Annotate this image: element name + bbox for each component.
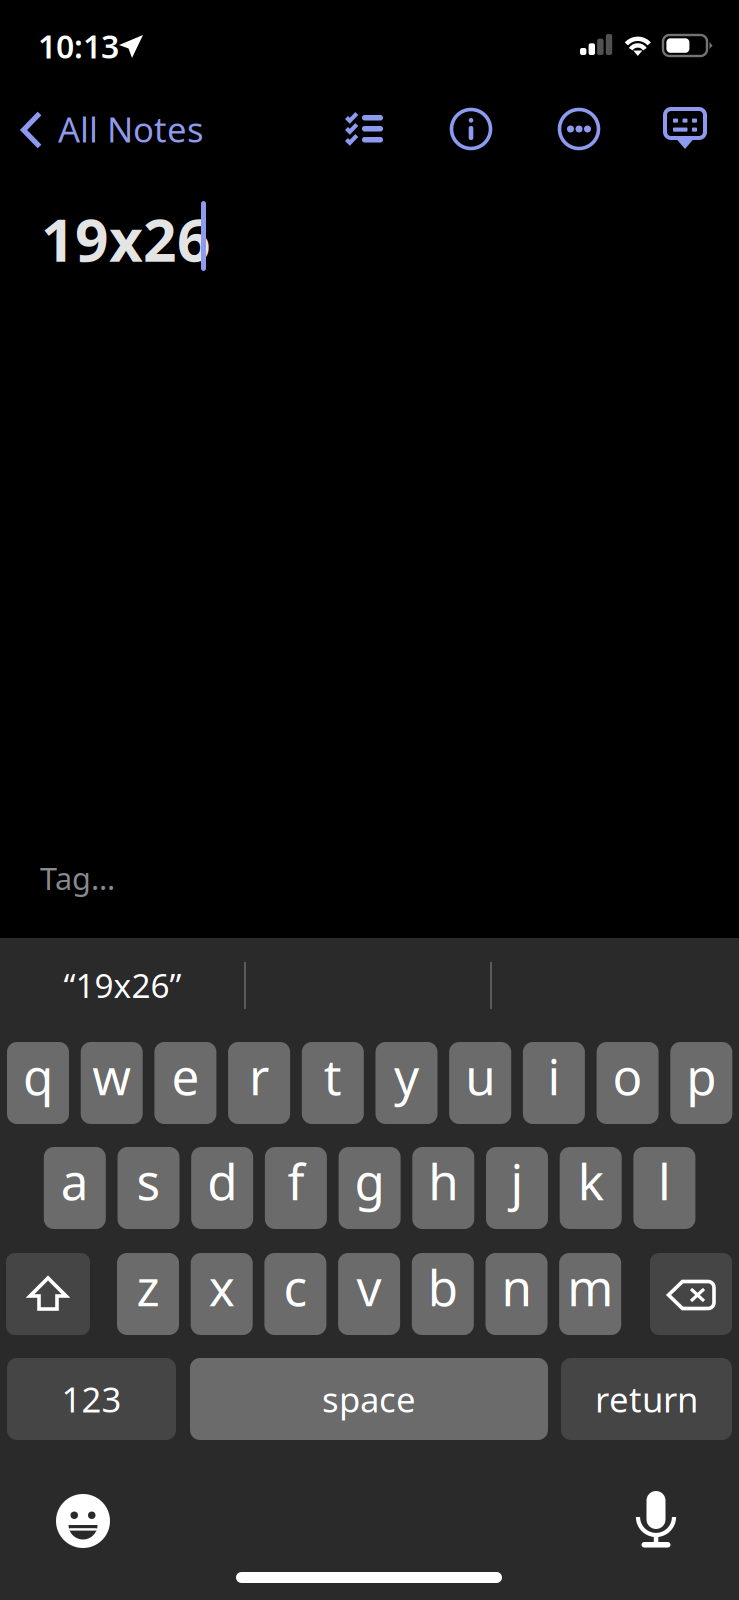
staticText: n — [501, 1254, 531, 1320]
button[interactable]: s — [117, 1147, 179, 1229]
staticText: v — [357, 1254, 382, 1320]
staticText: e — [171, 1043, 199, 1109]
staticText: k — [578, 1148, 604, 1214]
button[interactable]: d — [191, 1147, 253, 1229]
button[interactable]: a — [44, 1147, 106, 1229]
staticText: 123 — [61, 1376, 121, 1422]
staticText: x — [209, 1254, 235, 1320]
staticText: l — [658, 1148, 671, 1214]
staticText: z — [136, 1254, 159, 1320]
staticText: u — [465, 1043, 495, 1109]
button[interactable]: c — [264, 1253, 326, 1335]
staticText: 10:13 — [38, 25, 119, 67]
staticText: space — [322, 1376, 416, 1422]
staticText: r — [249, 1043, 269, 1109]
button[interactable]: Delete — [650, 1253, 732, 1335]
button[interactable]: m — [559, 1253, 621, 1335]
button[interactable]: space — [190, 1358, 548, 1440]
button[interactable]: p — [670, 1042, 732, 1124]
button[interactable]: i — [523, 1042, 585, 1124]
staticText: t — [324, 1043, 342, 1109]
staticText: g — [355, 1148, 385, 1214]
button[interactable]: Hide Keyboard — [663, 105, 707, 153]
button[interactable]: l — [633, 1147, 695, 1229]
button[interactable]: j — [486, 1147, 548, 1229]
button[interactable]: f — [265, 1147, 327, 1229]
button[interactable]: g — [339, 1147, 401, 1229]
button[interactable]: “19x26” — [0, 950, 245, 1020]
button[interactable]: e — [154, 1042, 216, 1124]
button[interactable]: Checklist — [342, 107, 386, 151]
button[interactable]: Shift — [6, 1253, 90, 1335]
button[interactable]: h — [412, 1147, 474, 1229]
button[interactable]: w — [81, 1042, 143, 1124]
staticText: a — [61, 1148, 89, 1214]
staticText: f — [287, 1148, 304, 1214]
staticText: All Notes — [58, 106, 204, 152]
staticText: b — [428, 1254, 458, 1320]
staticText: d — [207, 1148, 237, 1214]
button[interactable]: k — [560, 1147, 622, 1229]
button[interactable]: 123 — [7, 1358, 176, 1440]
button[interactable]: Dictate — [634, 1491, 678, 1547]
staticText: w — [92, 1043, 131, 1109]
staticText: y — [394, 1043, 419, 1109]
button[interactable]: n — [485, 1253, 547, 1335]
button[interactable]: All Notes — [20, 102, 250, 158]
staticText: q — [23, 1043, 53, 1109]
staticText: 19x26 — [41, 200, 211, 278]
staticText: j — [510, 1148, 523, 1214]
staticText: p — [686, 1043, 716, 1109]
staticText: i — [547, 1043, 560, 1109]
button[interactable]: Info — [449, 107, 493, 151]
button[interactable]: r — [228, 1042, 290, 1124]
button[interactable]: t — [302, 1042, 364, 1124]
staticText: m — [567, 1254, 613, 1320]
button[interactable]: q — [7, 1042, 69, 1124]
staticText: return — [595, 1376, 698, 1422]
button[interactable]: x — [191, 1253, 253, 1335]
staticText: “19x26” — [63, 963, 181, 1007]
staticText: s — [136, 1148, 160, 1214]
button[interactable]: u — [449, 1042, 511, 1124]
staticText: o — [613, 1043, 643, 1109]
button[interactable]: Emoji — [55, 1493, 111, 1549]
button[interactable]: z — [117, 1253, 179, 1335]
button[interactable]: return — [561, 1358, 732, 1440]
button[interactable]: y — [375, 1042, 437, 1124]
button[interactable]: o — [597, 1042, 659, 1124]
button[interactable]: b — [412, 1253, 474, 1335]
button[interactable]: More — [557, 107, 601, 151]
staticText: h — [428, 1148, 458, 1214]
button[interactable]: v — [338, 1253, 400, 1335]
staticText: Tag... — [40, 858, 115, 898]
staticText: c — [283, 1254, 307, 1320]
